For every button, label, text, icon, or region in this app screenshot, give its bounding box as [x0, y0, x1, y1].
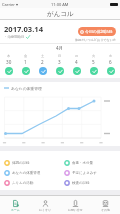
staticText: 水: [109, 54, 113, 58]
button[interactable]: 金: [17, 51, 34, 78]
staticText: 1: [24, 59, 27, 65]
staticText: 木: [7, 54, 11, 58]
staticText: 火: [92, 54, 96, 58]
button[interactable]: ふりんの活動: [0, 178, 60, 188]
staticText: あなたの体重管理: [12, 171, 41, 175]
staticText: 4月: [56, 45, 64, 51]
button[interactable]: 月: [68, 51, 85, 78]
button[interactable]: 食事・水分量: [60, 157, 120, 168]
button[interactable]: お問い合せ: [60, 196, 90, 214]
button[interactable]: 検査の記録: [60, 178, 120, 188]
staticText: 日: [58, 54, 62, 58]
staticText: お問い合せ: [68, 208, 83, 212]
staticText: 土: [41, 54, 45, 58]
staticText: ・治療開始日: [4, 35, 25, 39]
staticText: 体調の記録: [12, 161, 30, 165]
button[interactable]: 体調の記録: [0, 157, 60, 168]
staticText: 2017.03.14: [4, 24, 44, 34]
staticText: 3: [58, 59, 61, 65]
staticText: 月: [75, 54, 79, 58]
button[interactable]: ホーム: [0, 196, 30, 214]
staticText: 今日の体調記録: [85, 29, 113, 34]
button[interactable]: 土: [34, 51, 51, 78]
button[interactable]: 今日の体調記録: [78, 27, 116, 36]
staticText: 30: [6, 59, 12, 65]
staticText: 体調がいつもどおりでない方: [75, 38, 116, 42]
button[interactable]: 水: [102, 51, 119, 78]
staticText: 5: [92, 59, 95, 65]
button[interactable]: 予定によさみす: [60, 168, 120, 178]
button[interactable]: 火: [85, 51, 102, 78]
staticText: がんコル: [47, 10, 74, 18]
staticText: 検査の記録: [72, 181, 90, 185]
button[interactable]: その他: [90, 196, 120, 214]
staticText: あなたの体重管理: [11, 86, 42, 91]
staticText: 金: [24, 54, 28, 58]
staticText: 4: [75, 59, 78, 65]
staticText: その他: [101, 208, 110, 212]
button[interactable]: あなたの体重管理: [0, 168, 60, 178]
staticText: 11:00 AM: [51, 2, 69, 7]
staticText: 食事・水分量: [72, 161, 93, 165]
staticText: ホーム: [11, 208, 20, 212]
staticText: 6: [109, 59, 112, 65]
button[interactable]: おくすり: [30, 196, 60, 214]
staticText: ふりんの活動: [12, 181, 34, 185]
staticText: 2: [41, 59, 44, 65]
button[interactable]: 日: [51, 51, 68, 78]
button[interactable]: 木: [1, 51, 17, 78]
staticText: おくすり: [39, 208, 51, 212]
staticText: 予定によさみす: [72, 171, 97, 175]
staticText: Carrier ▾: [2, 2, 19, 7]
